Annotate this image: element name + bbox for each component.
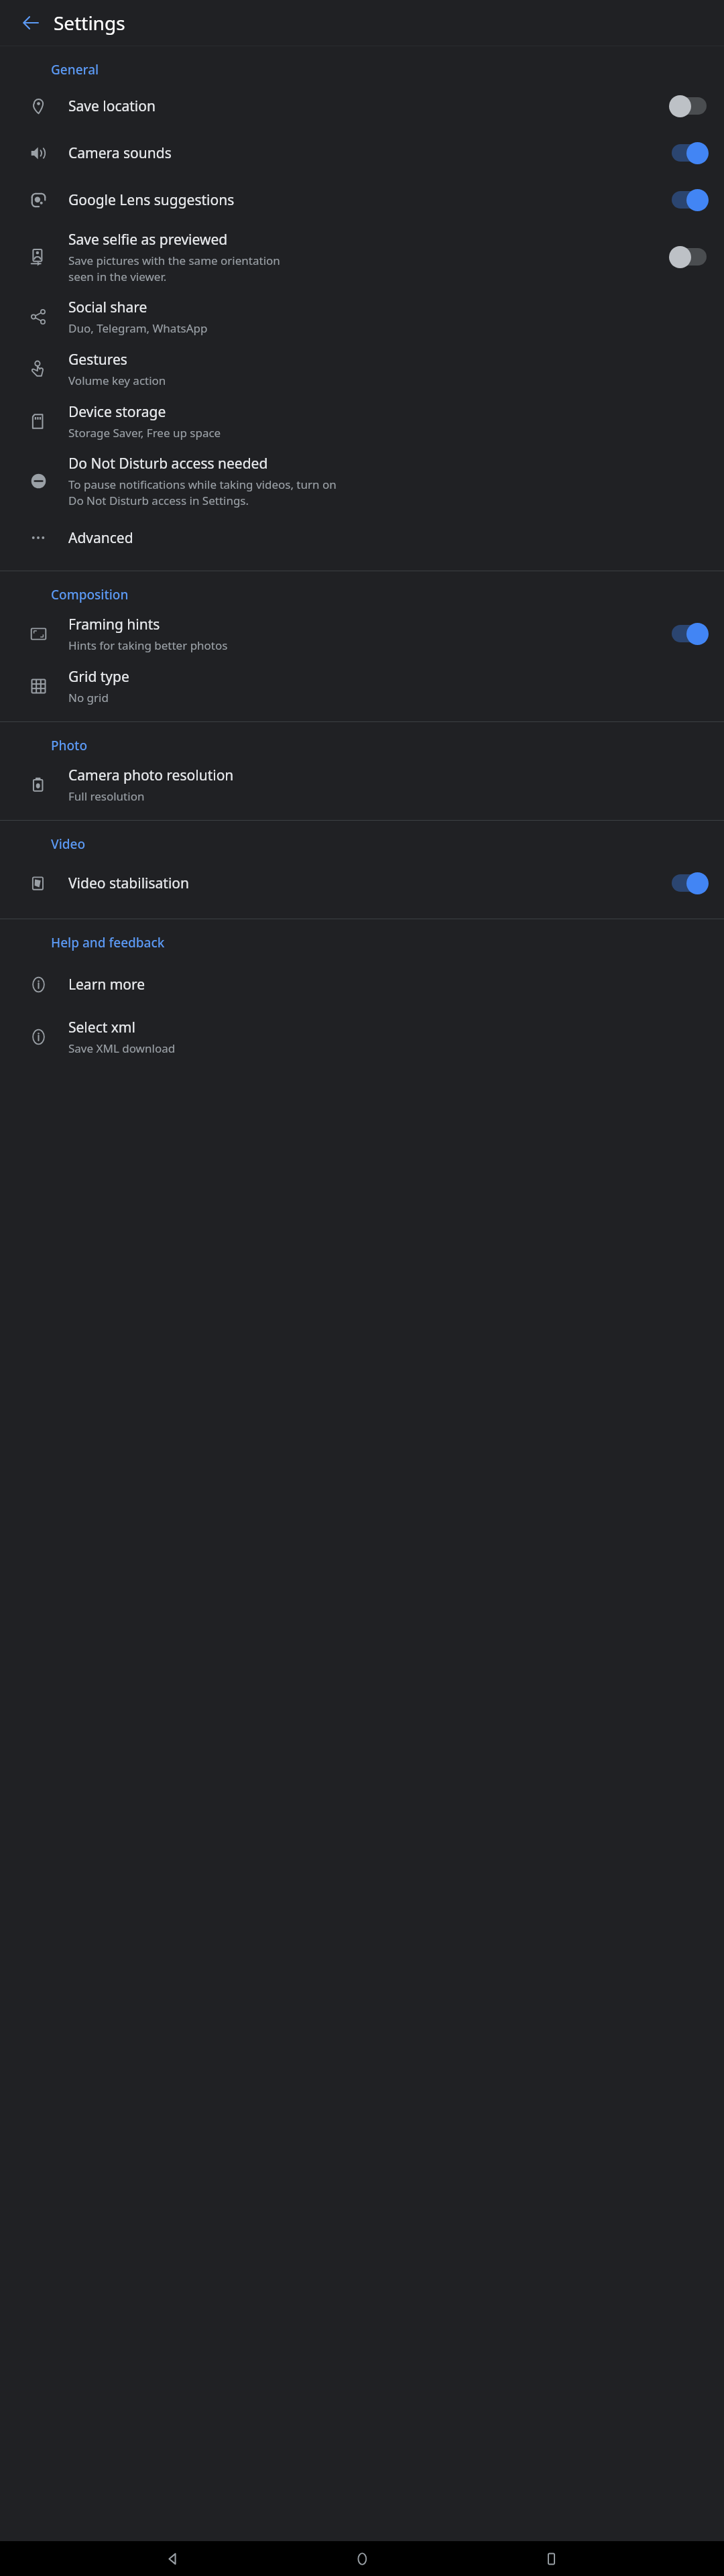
- staticText: Photo: [51, 737, 87, 754]
- button[interactable]: Do Not Disturb access needed: [0, 447, 724, 514]
- staticText: Advanced: [68, 528, 133, 548]
- button[interactable]: Social share: [0, 290, 724, 343]
- staticText: Full resolution: [68, 788, 145, 804]
- staticText: Device storage: [68, 402, 166, 422]
- button[interactable]: Camera sounds: [0, 129, 724, 176]
- staticText: Hints for taking better photos: [68, 638, 228, 653]
- button[interactable]: [669, 620, 712, 647]
- staticText: Camera photo resolution: [68, 766, 234, 785]
- button[interactable]: Google Lens suggestions: [0, 176, 724, 223]
- button[interactable]: Video stabilisation: [0, 857, 724, 909]
- staticText: Volume key action: [68, 373, 166, 388]
- button[interactable]: [669, 139, 712, 166]
- staticText: Gestures: [68, 350, 127, 369]
- staticText: Save location: [68, 97, 156, 116]
- staticText: Settings: [54, 10, 125, 36]
- staticText: Save pictures with the same orientation …: [68, 253, 280, 284]
- staticText: Camera sounds: [68, 143, 172, 163]
- staticText: Learn more: [68, 975, 145, 994]
- button[interactable]: Home: [346, 2542, 378, 2575]
- button[interactable]: Camera photo resolution: [0, 758, 724, 811]
- staticText: Composition: [51, 586, 129, 603]
- staticText: Select xml: [68, 1018, 135, 1037]
- staticText: Video: [51, 835, 86, 853]
- staticText: Save XML download: [68, 1041, 176, 1056]
- button[interactable]: Back: [15, 7, 47, 39]
- button[interactable]: [669, 186, 712, 213]
- button[interactable]: Back: [157, 2542, 189, 2575]
- button[interactable]: Grid type: [0, 660, 724, 712]
- staticText: Duo, Telegram, WhatsApp: [68, 320, 208, 336]
- staticText: Help and feedback: [51, 934, 165, 951]
- staticText: To pause notifications while taking vide…: [68, 477, 337, 508]
- button[interactable]: Select xml: [0, 1010, 724, 1063]
- staticText: Framing hints: [68, 615, 160, 634]
- staticText: Social share: [68, 298, 147, 317]
- staticText: Save selfie as previewed: [68, 230, 228, 249]
- staticText: Storage Saver, Free up space: [68, 425, 221, 441]
- staticText: Google Lens suggestions: [68, 190, 235, 210]
- button[interactable]: Save selfie as previewed: [0, 223, 724, 290]
- staticText: No grid: [68, 690, 109, 705]
- button[interactable]: Framing hints: [0, 607, 724, 660]
- button[interactable]: Advanced: [0, 514, 724, 561]
- button[interactable]: Learn more: [0, 958, 724, 1010]
- button[interactable]: Recent apps: [535, 2542, 567, 2575]
- staticText: General: [51, 61, 99, 78]
- staticText: Grid type: [68, 667, 129, 687]
- button[interactable]: [669, 243, 712, 270]
- staticText: Do Not Disturb access needed: [68, 454, 268, 473]
- button[interactable]: [669, 93, 712, 119]
- button[interactable]: Save location: [0, 82, 724, 129]
- button[interactable]: [669, 870, 712, 896]
- button[interactable]: Gestures: [0, 343, 724, 395]
- button[interactable]: Device storage: [0, 395, 724, 447]
- staticText: Video stabilisation: [68, 874, 190, 893]
